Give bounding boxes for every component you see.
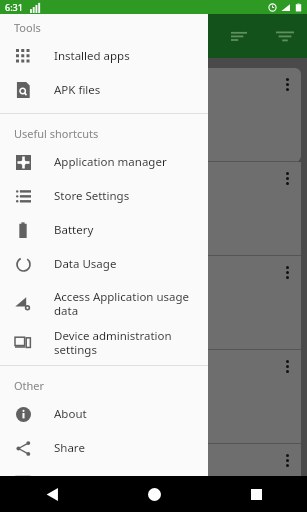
staticText: Application manager <box>54 154 167 170</box>
staticText: …ri <box>16 358 36 376</box>
button[interactable]: Home <box>137 477 171 511</box>
staticText: About <box>54 406 87 422</box>
button[interactable]: …e <box>6 162 301 256</box>
staticText: …a <box>16 264 34 282</box>
button[interactable]: Battery <box>0 213 208 247</box>
staticText: Store Settings <box>54 188 130 204</box>
button[interactable]: Back <box>35 477 69 511</box>
staticText: Share <box>54 440 85 456</box>
staticText: Data Usage <box>54 256 117 272</box>
staticText: Device administration settings <box>54 328 200 357</box>
staticText: Useful shortcuts <box>14 126 99 141</box>
staticText: Access Application usage data <box>54 289 190 318</box>
button[interactable]: More options <box>286 78 289 93</box>
button[interactable]: Filter <box>275 26 295 46</box>
button[interactable]: Installed apps <box>0 39 208 73</box>
staticText: Battery <box>54 222 94 238</box>
staticText: …hareapp <box>16 76 79 94</box>
button[interactable]: …hareapp <box>6 68 301 162</box>
button[interactable]: About <box>0 397 208 431</box>
button[interactable]: Device administration settings <box>0 325 208 359</box>
button[interactable]: …ri <box>6 350 301 444</box>
button[interactable]: Share <box>0 431 208 465</box>
staticText: APK files <box>54 82 101 98</box>
button[interactable]: More options <box>286 266 289 281</box>
button[interactable]: APK files <box>0 73 208 107</box>
staticText: Tools <box>14 20 41 35</box>
staticText: Other <box>14 378 45 393</box>
button[interactable]: More options <box>6 444 301 512</box>
staticText: 6:31 <box>5 1 23 13</box>
staticText: …esurele …,Version <box>16 410 62 436</box>
button[interactable]: Access Application usage data <box>0 281 208 325</box>
button[interactable]: Store Settings <box>0 179 208 213</box>
button[interactable]: …a <box>6 256 301 350</box>
button[interactable]: Exit <box>0 465 208 499</box>
button[interactable]: Recent apps <box>239 477 273 511</box>
button[interactable]: More options <box>286 360 289 375</box>
staticText: …lacompa …0,Version <box>16 316 67 342</box>
button[interactable]: Data Usage <box>0 247 208 281</box>
button[interactable]: More options <box>286 454 289 469</box>
button[interactable]: More options <box>286 172 289 187</box>
staticText: Installed apps <box>54 48 130 64</box>
button[interactable]: Application manager <box>0 145 208 179</box>
staticText: …pone …ersion <box>16 222 54 248</box>
button[interactable]: Sort <box>229 26 249 46</box>
staticText: Exit <box>54 474 74 490</box>
staticText: …locall,l …ersion <box>16 478 54 504</box>
